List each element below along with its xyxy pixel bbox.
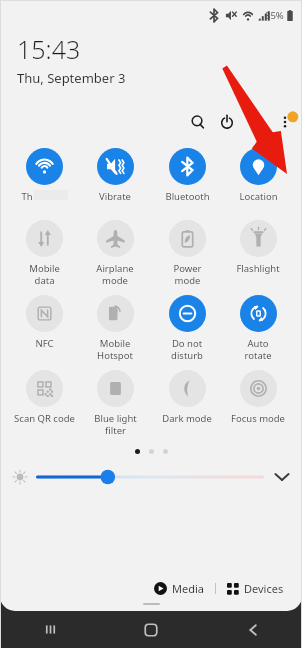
staticText: Devices: [244, 581, 284, 596]
button[interactable]: Mobile Hotspot: [82, 295, 148, 361]
other: Mobile Hotspot: [97, 295, 134, 332]
other: Dark mode: [169, 370, 206, 407]
staticText: Th: [21, 190, 33, 203]
button[interactable]: Bluetooth: [154, 148, 220, 203]
staticText: Auto rotate: [244, 337, 272, 361]
other: Power mode: [169, 220, 206, 257]
button[interactable]: Settings: [243, 109, 269, 135]
button[interactable]: Recent apps: [0, 611, 100, 648]
other: Mobile data: [26, 220, 63, 257]
button[interactable]: Flashlight: [225, 220, 291, 275]
staticText: Location: [239, 190, 278, 203]
staticText: Thu, September 3: [17, 69, 126, 87]
button[interactable]: Blue light filter: [82, 370, 148, 436]
other: Bluetooth: [169, 148, 206, 185]
staticText: Mobile data: [29, 262, 60, 286]
staticText: Do not disturb: [171, 337, 203, 361]
other: Vibrate: [97, 148, 134, 185]
button[interactable]: Scan QR code: [11, 370, 77, 425]
button[interactable]: Airplane mode: [82, 220, 148, 286]
button[interactable]: [36, 466, 264, 488]
button[interactable]: Brightness: [9, 466, 31, 488]
staticText: Flashlight: [236, 262, 280, 275]
button[interactable]: Home: [100, 611, 201, 648]
staticText: Focus mode: [231, 412, 285, 425]
button[interactable]: More options: [272, 109, 298, 135]
staticText: Airplane mode: [96, 262, 134, 286]
staticText: Power mode: [173, 262, 202, 286]
other: Th: [26, 148, 63, 185]
other: NFC: [26, 295, 63, 332]
other: Location: [240, 148, 277, 185]
button[interactable]: Power mode: [154, 220, 220, 286]
button[interactable]: Auto rotate: [225, 295, 291, 361]
button[interactable]: Do not disturb: [154, 295, 220, 361]
button[interactable]: Dark mode: [154, 370, 220, 425]
other: Focus mode: [240, 370, 277, 407]
button[interactable]: Search: [185, 109, 211, 135]
other: Scan QR code: [26, 370, 63, 407]
button[interactable]: Back: [201, 611, 302, 648]
other: Flashlight: [240, 220, 277, 257]
button[interactable]: Mobile data: [11, 220, 77, 286]
other: Blue light filter: [97, 370, 134, 407]
staticText: Dark mode: [162, 412, 212, 425]
button[interactable]: NFC: [11, 295, 77, 350]
button[interactable]: Media: [151, 578, 207, 599]
staticText: 15:43: [17, 32, 81, 66]
staticText: 85%: [265, 9, 284, 22]
button[interactable]: Devices: [224, 578, 287, 599]
button[interactable]: Location: [225, 148, 291, 203]
staticText: Media: [172, 581, 204, 596]
staticText: Mobile Hotspot: [97, 337, 133, 361]
staticText: NFC: [35, 337, 54, 350]
button[interactable]: Th: [11, 148, 77, 203]
button[interactable]: Focus mode: [225, 370, 291, 425]
other: Do not disturb: [169, 295, 206, 332]
button[interactable]: Expand brightness settings: [271, 466, 293, 488]
other: Auto rotate: [240, 295, 277, 332]
staticText: Scan QR code: [14, 412, 75, 425]
staticText: Blue light filter: [94, 412, 137, 436]
staticText: Vibrate: [99, 190, 131, 203]
button[interactable]: Power: [214, 109, 240, 135]
staticText: Bluetooth: [165, 190, 210, 203]
button[interactable]: Vibrate: [82, 148, 148, 203]
other: Airplane mode: [97, 220, 134, 257]
